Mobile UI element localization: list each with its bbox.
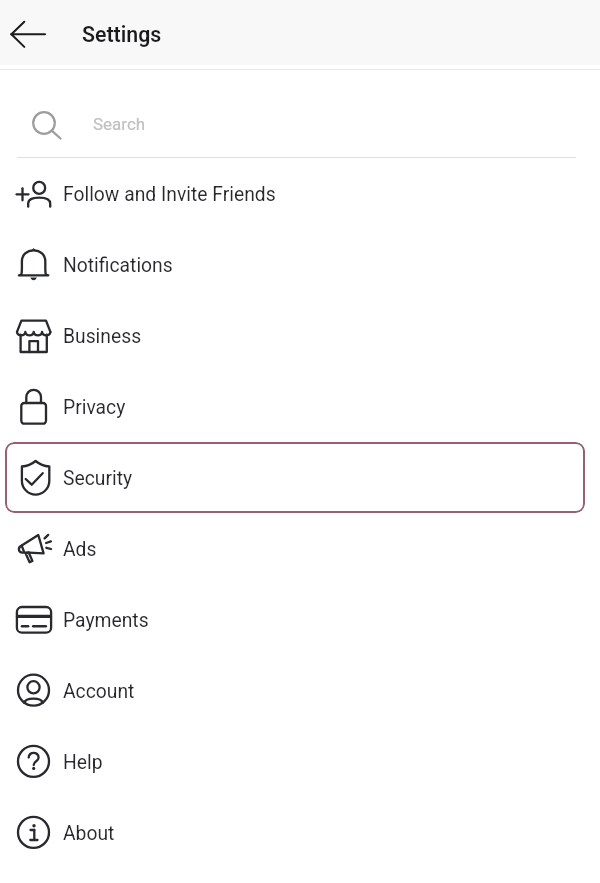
button[interactable]: Payments bbox=[0, 584, 600, 655]
staticText: Search bbox=[93, 114, 146, 134]
button[interactable]: Notifications bbox=[0, 229, 600, 300]
button[interactable]: Business bbox=[0, 300, 600, 371]
staticText: Settings bbox=[82, 22, 162, 47]
staticText: About bbox=[63, 822, 115, 845]
button[interactable]: Account bbox=[0, 655, 600, 726]
button[interactable]: Back bbox=[0, 2, 56, 62]
button[interactable]: Ads bbox=[0, 513, 600, 584]
staticText: Payments bbox=[63, 609, 149, 632]
button[interactable]: Privacy bbox=[0, 371, 600, 442]
button[interactable]: Search bbox=[0, 71, 600, 158]
button[interactable]: Help bbox=[0, 726, 600, 797]
staticText: Help bbox=[63, 751, 103, 774]
button[interactable]: Security bbox=[5, 442, 585, 513]
button[interactable]: Follow and Invite Friends bbox=[0, 158, 600, 229]
staticText: Follow and Invite Friends bbox=[63, 183, 276, 206]
staticText: Security bbox=[63, 467, 133, 490]
staticText: Account bbox=[63, 680, 135, 703]
staticText: Business bbox=[63, 325, 142, 348]
staticText: Notifications bbox=[63, 254, 173, 277]
button[interactable]: About bbox=[0, 797, 600, 868]
staticText: Privacy bbox=[63, 396, 126, 419]
staticText: Ads bbox=[63, 538, 97, 561]
